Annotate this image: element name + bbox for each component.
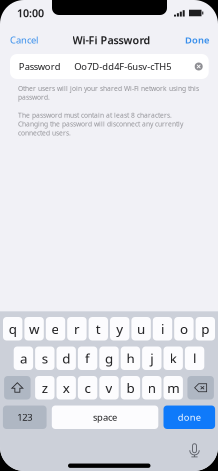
staticText: c [85,379,91,397]
button[interactable]: Shift [4,376,31,399]
staticText: k [170,349,177,367]
staticText: n [148,379,156,397]
button[interactable]: e [46,317,65,340]
staticText: Password [19,60,61,73]
staticText: o [180,320,188,338]
staticText: g [105,349,113,367]
staticText: i [161,320,164,338]
staticText: h [126,349,134,367]
button[interactable]: k [163,346,183,370]
staticText: t [96,320,101,338]
button[interactable]: 123 [3,405,47,429]
staticText: e [51,320,59,338]
staticText: r [74,320,80,338]
staticText: a [20,349,27,367]
staticText: j [150,349,153,367]
staticText: Cancel [10,34,38,46]
staticText: v [105,379,112,397]
button[interactable]: i [153,317,172,340]
button[interactable]: a [14,346,33,370]
button[interactable]: u [131,317,151,340]
button[interactable]: w [24,317,44,340]
staticText: y [116,320,123,338]
button[interactable]: d [56,346,76,370]
staticText: x [63,379,70,397]
button[interactable]: q [3,317,22,340]
staticText: Oo7D-dd4F-6usv-cTH5 [74,60,171,73]
button[interactable]: Delete [187,376,214,399]
staticText: u [137,320,145,338]
button[interactable]: z [35,376,54,399]
staticText: The password must contain at least 8 cha… [18,111,183,137]
button[interactable]: Clear text [192,59,206,73]
button[interactable]: n [142,376,161,399]
staticText: done [178,411,201,423]
staticText: Done [185,34,209,46]
button[interactable]: b [121,376,140,399]
staticText: Wi-Fi Password [72,33,150,47]
button[interactable]: v [99,376,119,399]
button[interactable]: c [78,376,97,399]
staticText: 123 [17,411,32,423]
button[interactable]: j [142,346,161,370]
staticText: p [201,320,209,338]
staticText: z [42,379,48,397]
button[interactable]: r [67,317,87,340]
staticText: l [193,349,196,367]
staticText: 10:00 [17,6,44,20]
button[interactable]: g [99,346,119,370]
staticText: space [93,411,117,423]
staticText: m [167,379,179,397]
staticText: f [85,349,90,367]
button[interactable]: o [174,317,194,340]
button[interactable]: l [185,346,204,370]
button[interactable]: f [78,346,97,370]
button[interactable]: space [52,405,158,429]
staticText: Other users will join your shared Wi-Fi … [18,84,199,102]
button[interactable]: Dictate [189,443,200,457]
staticText: d [62,349,70,367]
staticText: b [126,379,134,397]
button[interactable]: x [56,376,76,399]
staticText: q [9,320,17,338]
button[interactable]: done [163,405,215,429]
button[interactable]: Done [179,28,218,52]
button[interactable]: m [163,376,183,399]
staticText: s [42,349,48,367]
staticText: w [29,320,39,338]
button[interactable]: p [196,317,215,340]
button[interactable]: t [89,317,108,340]
button[interactable]: y [110,317,129,340]
button[interactable]: Cancel [0,28,44,52]
button[interactable]: h [121,346,140,370]
button[interactable]: s [35,346,54,370]
